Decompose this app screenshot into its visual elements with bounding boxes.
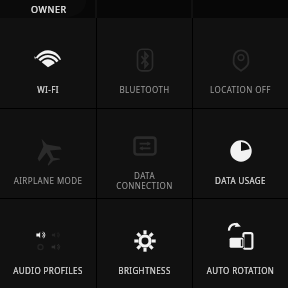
- staticText: BRIGHTNESS: [99, 265, 190, 276]
- staticText: LOCATION OFF: [195, 84, 286, 95]
- button[interactable]: BRIGHTNESS: [97, 199, 192, 288]
- button[interactable]: DATA CONNECTION: [97, 109, 192, 198]
- button[interactable]: WI-FI: [0, 18, 96, 108]
- button[interactable]: AUDIO PROFILES: [0, 199, 96, 288]
- button[interactable]: LOCATION OFF: [193, 18, 288, 108]
- staticText: AIRPLANE MODE: [2, 175, 94, 186]
- staticText: DATA USAGE: [195, 175, 286, 186]
- staticText: AUTO ROTATION: [195, 265, 286, 276]
- staticText: BLUETOOTH: [99, 84, 190, 95]
- button[interactable]: AIRPLANE MODE: [0, 109, 96, 198]
- staticText: DATA CONNECTION: [99, 170, 190, 191]
- staticText: WI-FI: [2, 84, 94, 95]
- staticText: OWNER: [31, 3, 67, 15]
- staticText: AUDIO PROFILES: [2, 265, 94, 276]
- button[interactable]: DATA USAGE: [193, 109, 288, 198]
- button[interactable]: BLUETOOTH: [97, 18, 192, 108]
- button[interactable]: AUTO ROTATION: [193, 199, 288, 288]
